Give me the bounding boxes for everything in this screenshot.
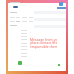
staticText: responsible them — [30, 44, 57, 49]
button[interactable]: Status — [18, 61, 22, 65]
button[interactable] — [13, 6, 18, 8]
staticText: place contact the below — [30, 40, 57, 45]
button[interactable]: Profile — [59, 2, 63, 6]
staticText: Message from your admin — [30, 37, 57, 42]
